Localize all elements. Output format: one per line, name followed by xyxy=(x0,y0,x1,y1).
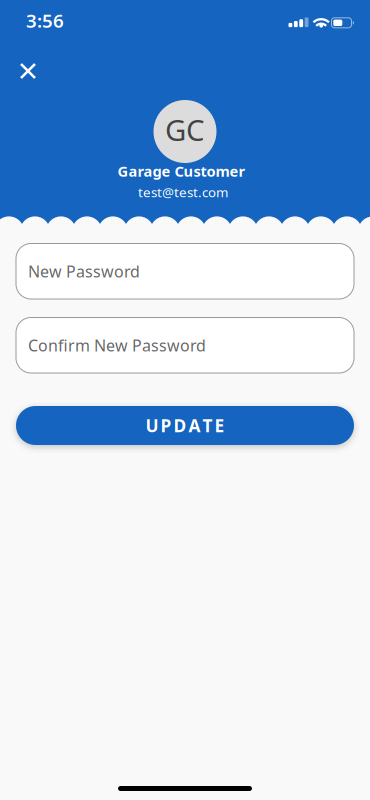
staticText: Confirm New Password xyxy=(28,335,206,356)
staticText: test@test.com xyxy=(138,183,228,201)
staticText: New Password xyxy=(28,261,140,282)
staticText: GC xyxy=(165,110,205,149)
staticText: 3:56 xyxy=(26,8,64,33)
button[interactable]: Confirm New Password xyxy=(16,317,354,373)
button[interactable]: New Password xyxy=(16,243,354,299)
button[interactable]: U P D A T E xyxy=(16,406,354,445)
staticText: Garage Customer xyxy=(117,161,245,181)
staticText: U P D A T E xyxy=(145,414,224,437)
button[interactable]: Close xyxy=(6,49,50,93)
